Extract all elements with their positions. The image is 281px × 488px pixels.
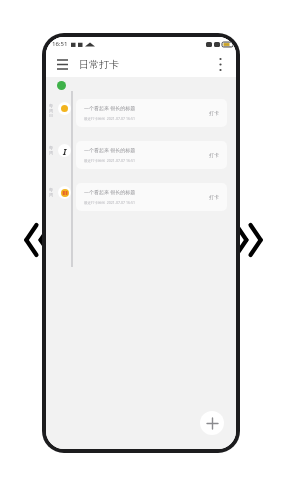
staticText: 打卡 <box>209 110 219 116</box>
staticText: 打卡 <box>209 152 219 158</box>
button[interactable]: Next <box>241 218 275 262</box>
staticText: 16:51 <box>52 40 68 48</box>
button[interactable]: 一个看起来 很长的标题 <box>76 141 227 169</box>
button[interactable]: More options <box>211 55 229 73</box>
button[interactable]: Add <box>200 411 224 435</box>
staticText: 一个看起来 很长的标题 <box>84 189 136 196</box>
staticText: 打卡 <box>209 194 219 200</box>
staticText: 最近打卡时间 2021-07-07 16:51 <box>84 200 135 205</box>
button[interactable]: Previous <box>12 218 46 262</box>
staticText: 每 <box>49 103 53 108</box>
staticText: 日 <box>49 113 53 118</box>
staticText: 一个看起来 很长的标题 <box>84 105 136 112</box>
staticText: 周 <box>49 150 53 155</box>
staticText: 周 <box>49 108 53 113</box>
staticText: 日常打卡 <box>79 58 119 71</box>
button[interactable]: Menu <box>53 55 71 73</box>
button[interactable]: 一个看起来 很长的标题 <box>76 183 227 211</box>
staticText: 一个看起来 很长的标题 <box>84 147 136 154</box>
staticText: 最近打卡时间 2021-07-07 16:51 <box>84 158 135 163</box>
button[interactable]: 一个看起来 很长的标题 <box>76 99 227 127</box>
staticText: 最近打卡时间 2021-07-07 16:51 <box>84 116 135 121</box>
staticText: 每 <box>49 145 53 150</box>
staticText: 周 <box>49 192 53 197</box>
staticText: 每 <box>49 187 53 192</box>
staticText: I <box>63 145 67 157</box>
